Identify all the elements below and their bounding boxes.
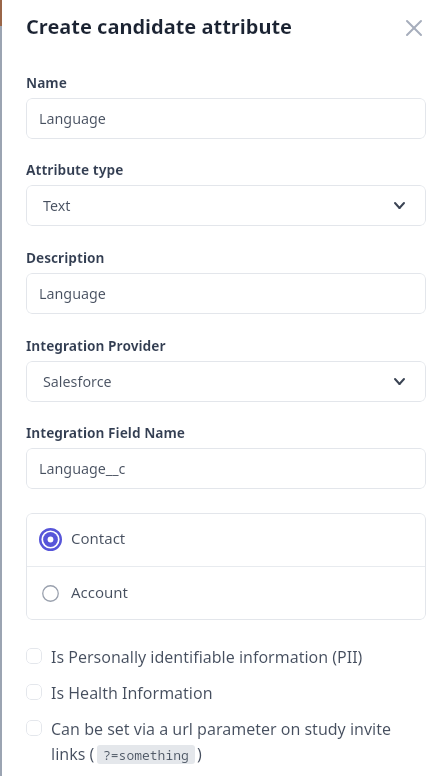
staticText: Name: [26, 73, 67, 92]
staticText: Integration Field Name: [26, 423, 185, 442]
staticText: Account: [71, 582, 129, 602]
staticText: Contact: [71, 528, 126, 548]
staticText: ): [197, 743, 202, 765]
staticText: Salesforce: [43, 372, 112, 391]
staticText: ?=something: [103, 746, 189, 764]
button[interactable]: Salesforce: [26, 361, 426, 402]
staticText: Create candidate attribute: [26, 13, 292, 40]
button[interactable]: Can be set via a url parameter on study …: [26, 720, 426, 767]
staticText: Description: [26, 248, 105, 267]
staticText: Attribute type: [26, 160, 124, 179]
staticText: Language__c: [39, 459, 126, 478]
staticText: links (: [51, 743, 95, 765]
button[interactable]: Text: [26, 185, 426, 226]
button[interactable]: Is Personally identifiable information (…: [26, 648, 426, 670]
button[interactable]: Close: [400, 14, 428, 42]
staticText: Is Health Information: [51, 682, 213, 704]
staticText: Language: [39, 109, 106, 128]
staticText: Is Personally identifiable information (…: [51, 646, 363, 668]
staticText: Can be set via a url parameter on study …: [51, 718, 392, 740]
button[interactable]: Language: [26, 273, 426, 314]
button[interactable]: Language: [26, 98, 426, 139]
button[interactable]: Account: [26, 567, 426, 620]
staticText: Language: [39, 284, 106, 303]
staticText: Integration Provider: [26, 336, 166, 355]
button[interactable]: Language__c: [26, 448, 426, 489]
button[interactable]: Is Health Information: [26, 684, 426, 706]
button[interactable]: Contact: [26, 513, 426, 566]
staticText: Text: [43, 196, 71, 215]
